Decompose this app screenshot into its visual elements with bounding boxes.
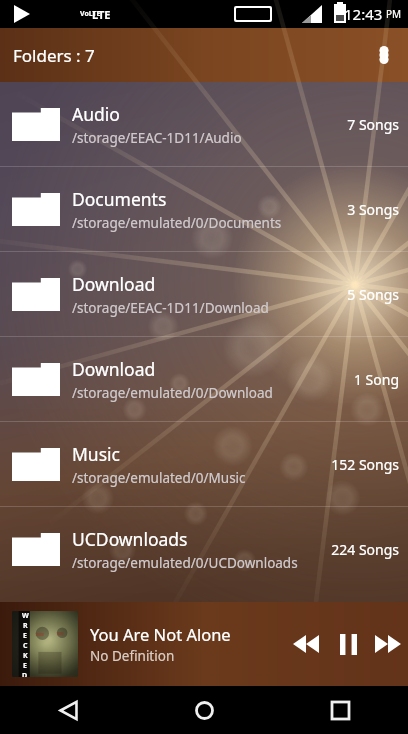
staticText: You Are Not Alone — [90, 623, 231, 645]
staticText: 224 Songs — [331, 540, 399, 559]
button[interactable]: Next — [368, 624, 408, 664]
staticText: /storage/emulated/0/Music — [72, 469, 246, 487]
staticText: Music — [72, 442, 120, 466]
staticText: 152 Songs — [331, 455, 399, 474]
button[interactable]: Music — [0, 422, 408, 506]
staticText: 3 Songs — [347, 200, 399, 219]
staticText: D — [22, 671, 28, 677]
button[interactable]: Download — [0, 337, 408, 421]
staticText: /storage/emulated/0/Documents — [72, 214, 282, 232]
staticText: Folders : 7 — [13, 44, 95, 67]
staticText: /storage/EEAC-1D11/Download — [72, 299, 269, 317]
button[interactable]: Download — [0, 252, 408, 336]
button[interactable]: Audio — [0, 82, 408, 166]
button[interactable]: Recents — [316, 686, 364, 734]
button[interactable]: UCDownloads — [0, 507, 408, 591]
staticText: Download — [72, 357, 156, 381]
button[interactable]: Pause — [328, 624, 368, 664]
staticText: R — [23, 621, 28, 631]
staticText: 12:43 — [344, 4, 383, 24]
button[interactable]: W — [0, 602, 408, 686]
button[interactable]: Previous — [284, 622, 328, 666]
staticText: C — [23, 641, 28, 651]
staticText: /storage/emulated/0/Download — [72, 384, 273, 402]
staticText: Audio — [72, 102, 120, 126]
staticText: UCDownloads — [72, 527, 188, 551]
staticText: E — [23, 661, 27, 671]
button[interactable]: Documents — [0, 167, 408, 251]
staticText: K — [23, 651, 28, 661]
button[interactable]: More options — [360, 28, 408, 82]
staticText: W — [22, 611, 29, 621]
staticText: No Definition — [90, 647, 175, 665]
staticText: LTE — [92, 7, 111, 22]
staticText: 7 Songs — [347, 115, 399, 134]
staticText: PM — [386, 7, 402, 21]
staticText: E — [23, 631, 27, 641]
staticText: /storage/emulated/0/UCDownloads — [72, 554, 298, 572]
staticText: VoLTE — [80, 9, 101, 19]
staticText: 5 Songs — [347, 285, 399, 304]
staticText: /storage/EEAC-1D11/Audio — [72, 129, 242, 147]
button[interactable]: Back — [44, 686, 92, 734]
staticText: Documents — [72, 187, 167, 211]
staticText: Download — [72, 272, 156, 296]
button[interactable]: Home — [180, 686, 228, 734]
staticText: 1 Song — [353, 370, 399, 389]
